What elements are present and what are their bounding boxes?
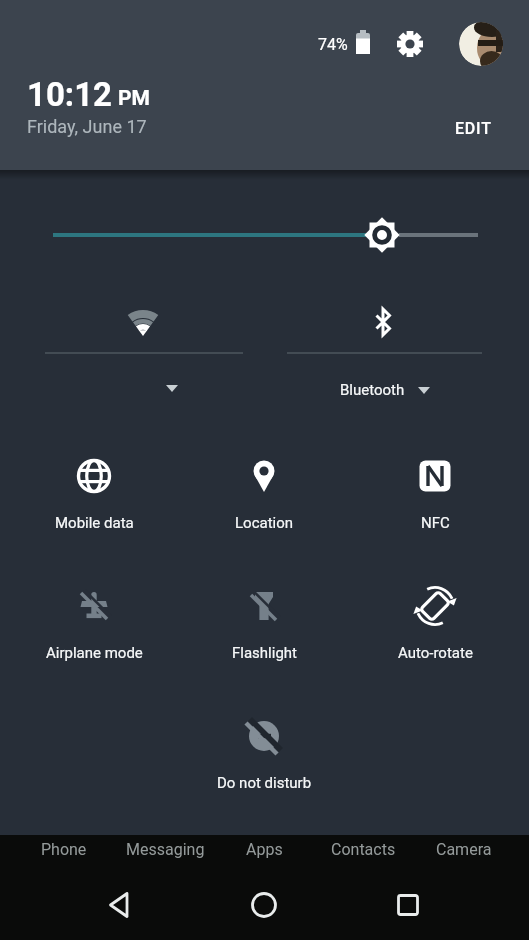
button[interactable] [24, 440, 164, 540]
button[interactable] [85, 875, 155, 935]
staticText: 10:12 [27, 75, 113, 114]
button[interactable] [194, 700, 334, 800]
button[interactable] [365, 440, 505, 540]
button[interactable] [194, 440, 334, 540]
staticText: Do not disturb [217, 774, 312, 792]
staticText: EDIT [455, 119, 492, 138]
button[interactable] [275, 290, 495, 365]
button[interactable] [330, 368, 450, 408]
button[interactable] [373, 875, 443, 935]
staticText: Bluetooth [340, 381, 405, 399]
staticText: 74% [318, 35, 348, 54]
staticText: PM [118, 86, 150, 111]
button[interactable] [130, 368, 214, 408]
button[interactable] [459, 22, 503, 66]
staticText: Mobile data [55, 514, 134, 532]
staticText: Location [235, 514, 294, 532]
button[interactable] [24, 570, 164, 670]
staticText: Contacts [331, 840, 396, 859]
staticText: Auto-rotate [398, 644, 473, 662]
button[interactable] [388, 22, 432, 66]
button[interactable] [365, 570, 505, 670]
button[interactable] [40, 205, 490, 265]
staticText: NFC [421, 514, 450, 532]
staticText: Messaging [126, 840, 205, 859]
button[interactable] [194, 570, 334, 670]
staticText: Airplane mode [46, 644, 143, 662]
staticText: Phone [41, 840, 87, 859]
button[interactable]: EDIT [443, 112, 503, 144]
staticText: Flashlight [232, 644, 297, 662]
staticText: Friday, June 17 [27, 116, 147, 137]
staticText: Apps [246, 840, 283, 859]
button[interactable] [229, 875, 299, 935]
staticText: Camera [436, 840, 492, 859]
button[interactable] [33, 290, 253, 365]
